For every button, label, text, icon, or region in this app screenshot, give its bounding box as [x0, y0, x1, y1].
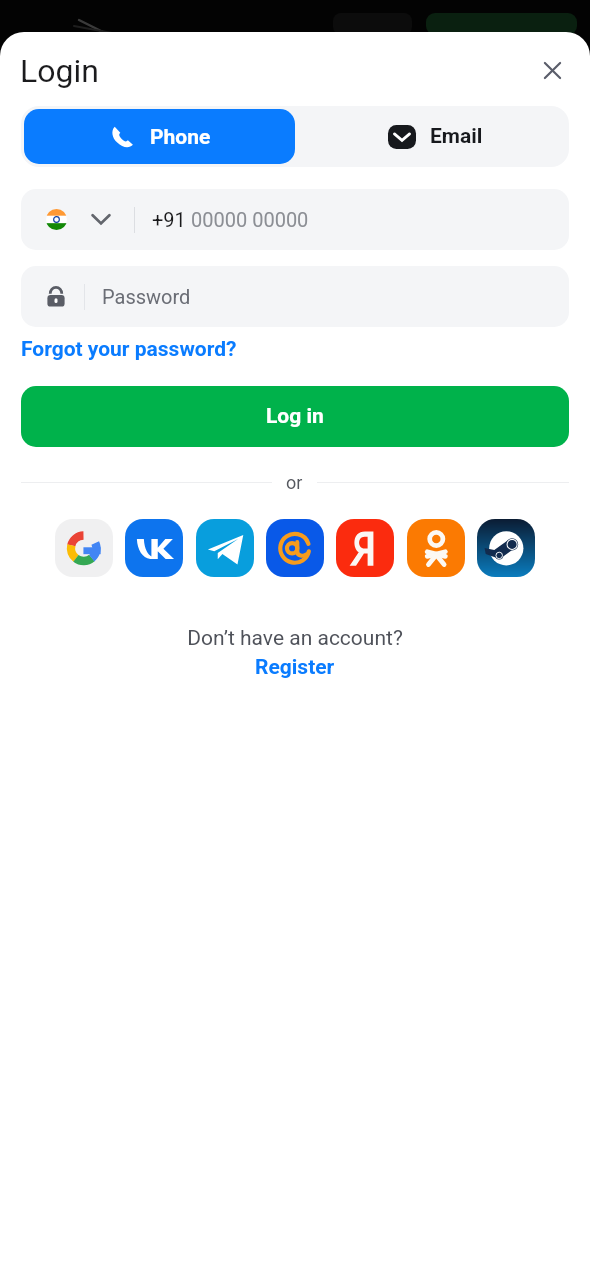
staticText: Register	[255, 655, 335, 680]
staticText: Password	[102, 285, 191, 308]
button[interactable]: Forgot your password?	[21, 337, 237, 362]
button[interactable]: Log in	[21, 386, 569, 447]
staticText: Log in	[266, 404, 324, 429]
staticText: Phone	[150, 125, 211, 150]
button[interactable]: Password	[21, 266, 569, 327]
button[interactable]: Sign in with Yandex	[336, 519, 394, 577]
staticText: or	[286, 472, 303, 493]
button[interactable]: Email	[295, 109, 566, 164]
staticText: Email	[430, 124, 483, 149]
button[interactable]: Register	[255, 655, 335, 680]
button[interactable]: Close	[535, 53, 569, 87]
button[interactable]: Sign in with Google	[55, 519, 113, 577]
staticText: Don’t have an account?	[187, 626, 403, 651]
button[interactable]: Phone	[24, 109, 295, 164]
button[interactable]: Sign in with Odnoklassniki	[407, 519, 465, 577]
button[interactable]: Sign in with Steam	[477, 519, 535, 577]
staticText: Login	[20, 52, 99, 90]
staticText: +91	[152, 208, 191, 231]
staticText: 00000 00000	[191, 208, 309, 231]
button[interactable]: Sign in with VK	[125, 519, 183, 577]
button[interactable]: +91	[21, 189, 569, 250]
button[interactable]: Sign in with Telegram	[196, 519, 254, 577]
staticText: Forgot your password?	[21, 337, 237, 362]
button[interactable]: Sign in with Mail.ru	[266, 519, 324, 577]
